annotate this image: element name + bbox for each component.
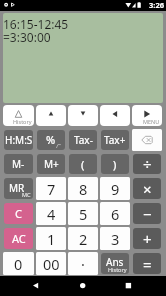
button[interactable]: C (4, 203, 33, 224)
button[interactable]: % (37, 130, 65, 150)
staticText: 5 (79, 204, 88, 224)
staticText: 2 (79, 229, 88, 249)
button[interactable]: AC (4, 228, 33, 249)
staticText: 00 (43, 254, 60, 274)
staticText: 1 (47, 229, 56, 249)
staticText: 3 (111, 229, 120, 249)
staticText: − (143, 204, 152, 224)
staticText: 4 (47, 204, 56, 224)
button[interactable]: 6 (100, 202, 130, 225)
button[interactable]: ÷ (133, 154, 161, 174)
staticText: ÷ (143, 154, 152, 174)
button[interactable]: + (133, 228, 161, 249)
staticText: Tax+ (104, 133, 126, 147)
button[interactable]: Up (36, 105, 66, 126)
button[interactable]: Down (68, 105, 98, 126)
button[interactable]: 5 (68, 202, 98, 225)
staticText: % (46, 132, 56, 147)
button[interactable]: Backspace (132, 129, 162, 151)
button[interactable]: 7 (36, 177, 66, 200)
staticText: 6 (111, 204, 120, 224)
staticText: = (143, 254, 152, 274)
button[interactable]: 8 (68, 177, 98, 200)
staticText: H:M:S (5, 133, 33, 147)
button[interactable]: MR (4, 178, 33, 199)
staticText: 8 (79, 179, 88, 199)
button[interactable]: M+ (37, 154, 65, 174)
staticText: 16:15-12:45 =3:30:00 (3, 16, 69, 46)
staticText: Tax- (74, 133, 93, 147)
staticText: M- (12, 157, 25, 171)
button[interactable]: 9 (100, 177, 130, 200)
button[interactable]: Menu (132, 105, 162, 126)
staticText: 3:26 (149, 0, 164, 10)
button[interactable]: History (3, 105, 34, 126)
button[interactable]: = (133, 253, 161, 274)
button[interactable]: 4 (36, 202, 66, 225)
button[interactable]: Tax+ (101, 130, 129, 150)
button[interactable]: · (68, 252, 98, 275)
button[interactable]: 00 (36, 252, 66, 275)
staticText: × (143, 179, 152, 199)
staticText: MC (22, 191, 31, 198)
button[interactable]: ) (101, 154, 129, 174)
button[interactable]: Tax- (69, 130, 97, 150)
staticText: 9 (111, 179, 120, 199)
staticText: ) (113, 157, 117, 172)
staticText: AC (12, 231, 26, 246)
staticText: + (143, 229, 152, 249)
button[interactable]: × (133, 178, 161, 199)
staticText: History (108, 266, 127, 273)
button[interactable]: Ans (101, 253, 129, 274)
button[interactable]: Left (100, 105, 130, 126)
button[interactable]: 1 (36, 227, 66, 250)
button[interactable]: ( (69, 154, 97, 174)
button[interactable]: − (133, 203, 161, 224)
button[interactable]: 2 (68, 227, 98, 250)
staticText: C (15, 206, 22, 221)
staticText: MR (9, 181, 25, 195)
button[interactable]: 3 (100, 227, 130, 250)
staticText: ( (81, 157, 85, 172)
staticText: 7 (47, 179, 56, 199)
staticText: M+ (44, 157, 59, 171)
staticText: · (81, 254, 85, 274)
button[interactable]: H:M:S (4, 130, 33, 150)
staticText: MENU (143, 118, 160, 125)
staticText: 0 (14, 254, 23, 274)
button[interactable]: 0 (3, 252, 34, 275)
staticText: History (13, 118, 32, 125)
button[interactable]: M- (4, 154, 33, 174)
staticText: Ans (106, 255, 124, 269)
